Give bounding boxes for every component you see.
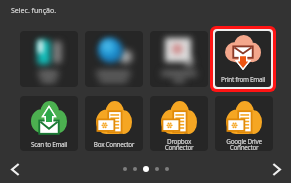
staticText: Print from Email xyxy=(215,75,271,84)
staticText: Selec. função. xyxy=(11,6,57,16)
button[interactable] xyxy=(20,31,78,87)
button[interactable]: Previous page xyxy=(0,155,30,183)
staticText: Box Connector xyxy=(85,140,143,149)
button[interactable]: Print from Email xyxy=(215,31,271,87)
staticText: Scan to Email xyxy=(20,140,78,149)
button[interactable]: Google Drive Connector xyxy=(215,96,273,151)
button[interactable] xyxy=(150,31,208,87)
staticText: Dropbox Connector xyxy=(150,137,208,151)
button[interactable]: Box Connector xyxy=(85,96,143,151)
button[interactable]: Scan to Email xyxy=(20,96,78,151)
button[interactable] xyxy=(85,31,143,87)
button[interactable]: Next page xyxy=(261,155,291,183)
button[interactable]: Dropbox Connector xyxy=(150,96,208,151)
staticText: Google Drive Connector xyxy=(215,137,273,151)
